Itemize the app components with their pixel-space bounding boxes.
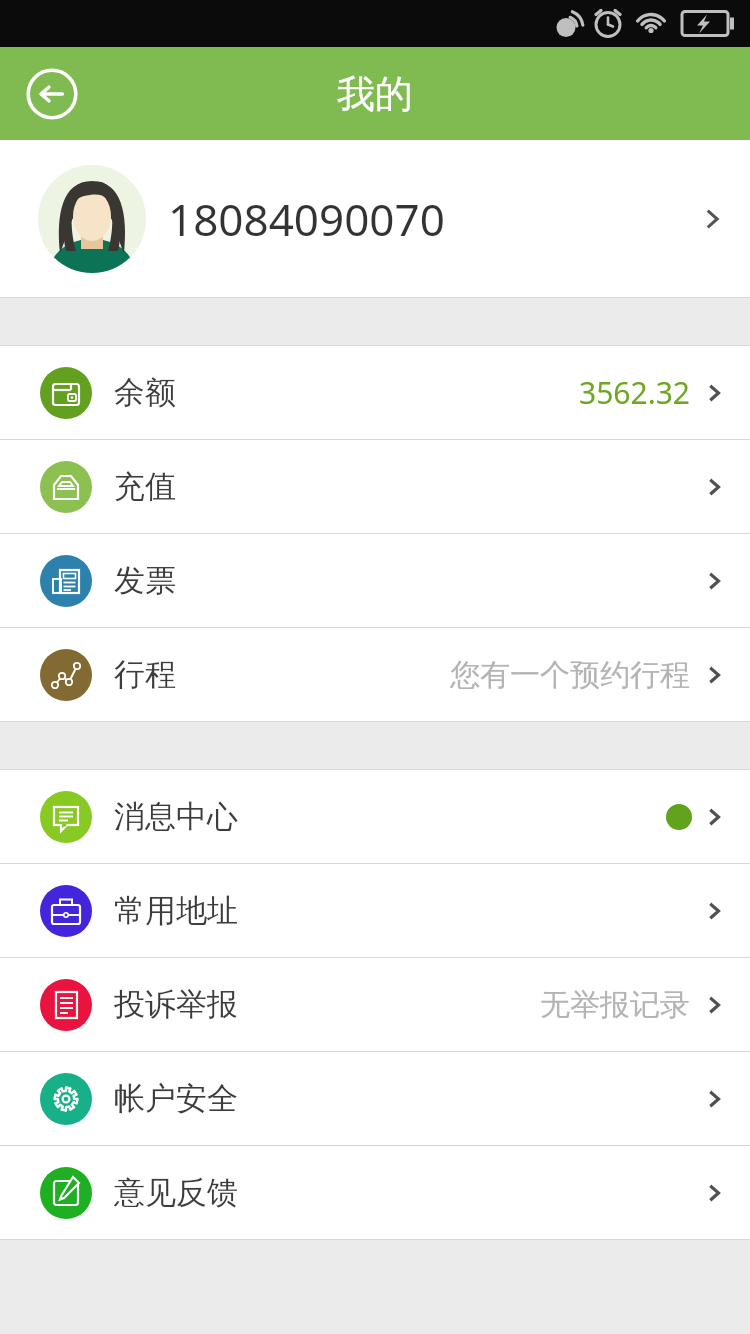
staticText: 我的 <box>337 70 413 118</box>
button[interactable]: 投诉举报 <box>0 958 750 1051</box>
staticText: 消息中心 <box>114 797 238 836</box>
button[interactable]: 余额 <box>0 346 750 439</box>
staticText: 帐户安全 <box>114 1079 238 1118</box>
button[interactable]: Back <box>22 64 82 124</box>
staticText: 18084090070 <box>168 189 445 249</box>
button[interactable]: 意见反馈 <box>0 1146 750 1239</box>
staticText: 您有一个预约行程 <box>450 656 690 694</box>
staticText: 意见反馈 <box>114 1173 238 1212</box>
staticText: 无举报记录 <box>540 986 690 1024</box>
staticText: 常用地址 <box>114 891 238 930</box>
staticText: 行程 <box>114 655 176 694</box>
button[interactable]: 消息中心 <box>0 770 750 863</box>
button[interactable]: 常用地址 <box>0 864 750 957</box>
staticText: 发票 <box>114 561 176 600</box>
staticText: 充值 <box>114 467 176 506</box>
button[interactable]: 发票 <box>0 534 750 627</box>
staticText: 余额 <box>114 373 176 412</box>
button[interactable]: 充值 <box>0 440 750 533</box>
button[interactable]: 行程 <box>0 628 750 721</box>
button[interactable]: 帐户安全 <box>0 1052 750 1145</box>
staticText: 投诉举报 <box>114 985 238 1024</box>
staticText: 3562.32 <box>579 372 690 413</box>
button[interactable]: 18084090070 <box>0 140 750 297</box>
